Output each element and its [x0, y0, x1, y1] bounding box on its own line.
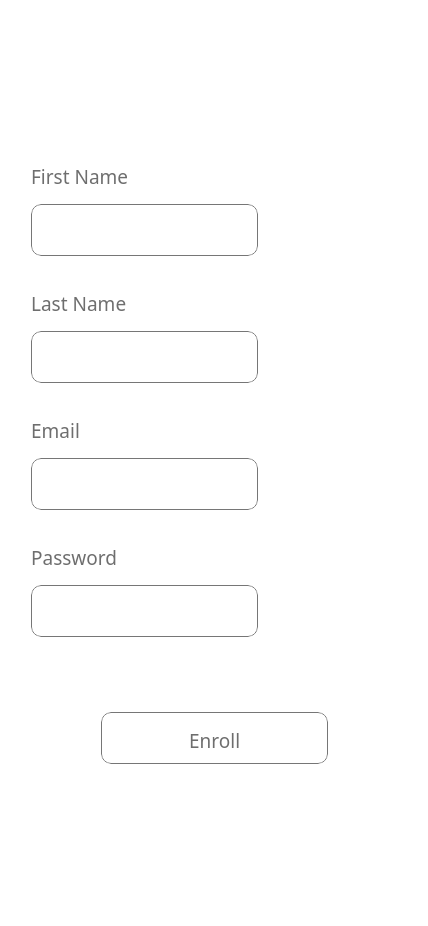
staticText: Email	[31, 418, 80, 444]
button[interactable]: Enroll	[101, 712, 328, 764]
button[interactable]: First Name	[31, 204, 258, 256]
staticText: Last Name	[31, 291, 127, 317]
button[interactable]: Password	[31, 585, 258, 637]
button[interactable]: Email	[31, 458, 258, 510]
button[interactable]: Last Name	[31, 331, 258, 383]
staticText: Enroll	[101, 728, 328, 754]
staticText: Password	[31, 545, 117, 571]
staticText: First Name	[31, 164, 129, 190]
